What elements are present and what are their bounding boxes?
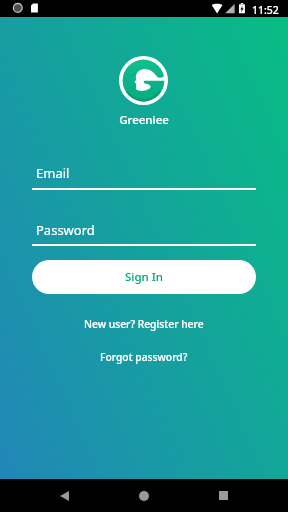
staticText: Forgot password?: [100, 350, 188, 364]
button[interactable]: New user? Register here: [74, 314, 214, 334]
staticText: Greeniee: [0, 112, 288, 128]
button[interactable]: Home: [120, 479, 168, 512]
staticText: New user? Register here: [84, 317, 204, 331]
staticText: 11:52: [252, 3, 279, 17]
button[interactable]: Forgot password?: [90, 347, 198, 367]
button[interactable]: Sign In: [32, 260, 256, 294]
staticText: Sign In: [125, 269, 164, 285]
button[interactable]: Recent apps: [199, 479, 247, 512]
staticText: Password: [36, 221, 95, 239]
button[interactable]: Back: [40, 479, 88, 512]
staticText: Email: [36, 164, 70, 182]
